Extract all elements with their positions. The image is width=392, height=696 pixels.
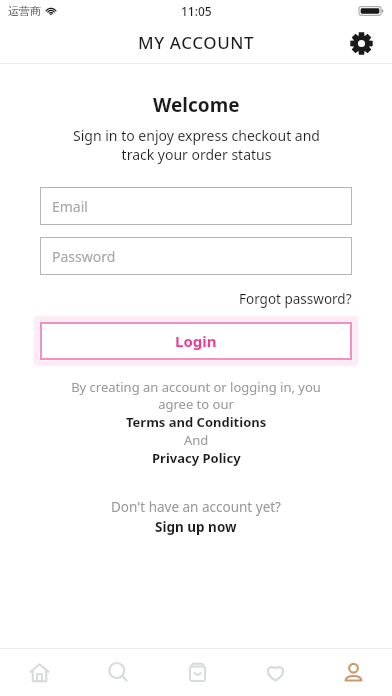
staticText: Don't have an account yet? <box>111 498 281 516</box>
staticText: 运营商 <box>8 4 41 18</box>
staticText: MY ACCOUNT <box>138 31 255 54</box>
staticText: Password <box>52 247 116 266</box>
staticText: By creating an account or logging in, yo… <box>71 378 321 413</box>
button[interactable]: Settings <box>344 26 378 60</box>
button[interactable]: Account <box>314 649 392 696</box>
button[interactable]: Sign up now <box>155 518 237 536</box>
staticText: Sign in to enjoy express checkout and tr… <box>73 126 320 164</box>
staticText: 11:05 <box>181 3 212 19</box>
button[interactable]: Login <box>40 322 352 360</box>
staticText: And <box>184 431 209 449</box>
button[interactable]: Password <box>40 237 352 275</box>
staticText: Privacy Policy <box>152 449 241 467</box>
button[interactable]: Search <box>79 649 158 696</box>
button[interactable]: Home <box>0 649 79 696</box>
staticText: Terms and Conditions <box>126 413 267 431</box>
button[interactable]: Terms and Conditions <box>126 413 267 431</box>
button[interactable]: Email <box>40 187 352 225</box>
button[interactable]: Forgot password? <box>239 288 352 310</box>
staticText: Welcome <box>153 92 240 118</box>
button[interactable]: Wishlist <box>236 649 314 696</box>
staticText: Login <box>175 331 217 351</box>
button[interactable]: Bag <box>158 649 236 696</box>
staticText: Forgot password? <box>239 290 352 308</box>
staticText: Email <box>52 197 88 216</box>
staticText: Sign up now <box>155 518 237 536</box>
button[interactable]: Privacy Policy <box>152 449 241 467</box>
